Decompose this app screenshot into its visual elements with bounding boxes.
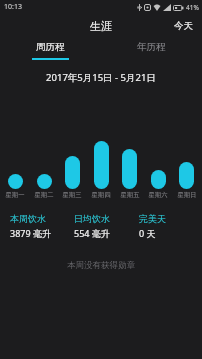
staticText: 今天 bbox=[174, 20, 193, 32]
staticText: 日均饮水 bbox=[74, 213, 110, 224]
staticText: 年历程 bbox=[137, 41, 166, 53]
staticText: 本周饮水 bbox=[10, 213, 46, 224]
button[interactable]: 年历程 bbox=[101, 37, 202, 60]
staticText: 3879 毫升 bbox=[10, 227, 51, 239]
staticText: 2017年5月15日 - 5月21日 bbox=[0, 71, 202, 84]
staticText: 星期二 bbox=[30, 191, 58, 199]
staticText: 星期一 bbox=[1, 191, 29, 199]
button[interactable]: 周历程 bbox=[0, 37, 101, 60]
staticText: 星期日 bbox=[173, 191, 201, 199]
staticText: 星期三 bbox=[58, 191, 86, 199]
staticText: 0 天 bbox=[139, 227, 156, 239]
staticText: 周历程 bbox=[36, 41, 65, 53]
staticText: 完美天 bbox=[139, 213, 166, 224]
staticText: 星期五 bbox=[116, 191, 144, 199]
staticText: 本周没有获得勋章 bbox=[0, 260, 202, 271]
staticText: 星期六 bbox=[144, 191, 172, 199]
staticText: 星期四 bbox=[87, 191, 115, 199]
staticText: 10:13 bbox=[4, 2, 22, 12]
staticText: 554 毫升 bbox=[74, 227, 110, 239]
staticText: 41% bbox=[186, 3, 199, 12]
staticText: 生涯 bbox=[90, 19, 112, 33]
button[interactable]: 今天 bbox=[165, 15, 202, 37]
